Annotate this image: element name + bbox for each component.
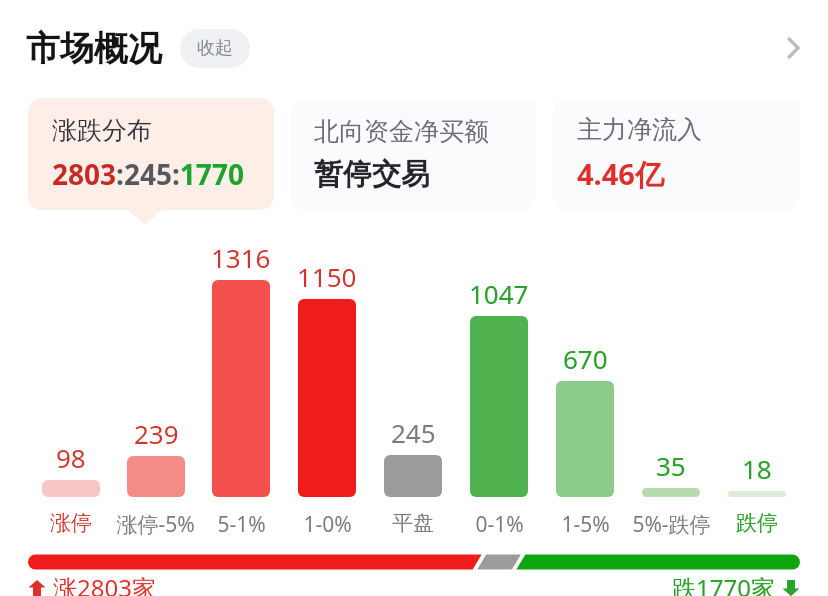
staticText: 0-1% <box>475 510 524 536</box>
staticText: 涨停-5% <box>116 510 195 536</box>
staticText: 5-1% <box>217 510 266 536</box>
staticText: 35 <box>656 448 686 483</box>
staticText: 涨跌分布 <box>52 115 152 146</box>
staticText: 平盘 <box>392 510 434 536</box>
staticText: 245 <box>391 415 436 450</box>
staticText: 1-5% <box>561 510 610 536</box>
staticText: 主力净流入 <box>577 114 702 145</box>
staticText: 1-0% <box>303 510 352 536</box>
button[interactable]: 涨跌分布 <box>28 98 274 210</box>
staticText: 2803:245:1770 <box>52 155 244 193</box>
staticText: 98 <box>56 440 86 475</box>
staticText: 涨停 <box>50 510 92 536</box>
staticText: 跌1770家 <box>672 571 775 596</box>
staticText: 1047 <box>469 276 529 311</box>
staticText: 市场概况 <box>26 27 162 70</box>
staticText: 670 <box>563 341 608 376</box>
staticText: 1316 <box>211 240 271 275</box>
staticText: 18 <box>742 451 772 486</box>
staticText: 收起 <box>197 37 233 60</box>
staticText: 北向资金净买额 <box>314 116 489 147</box>
button[interactable]: 跌1770家 <box>672 571 800 596</box>
button[interactable]: 展开更多 <box>764 19 822 77</box>
button[interactable]: 北向资金净买额 <box>290 98 537 210</box>
staticText: 暂停交易 <box>314 156 430 193</box>
button[interactable]: 涨2803家 <box>28 571 156 596</box>
staticText: 涨2803家 <box>53 571 156 596</box>
staticText: 239 <box>134 416 179 451</box>
staticText: 5%-跌停 <box>632 510 711 536</box>
button[interactable]: 收起 <box>180 29 250 68</box>
staticText: 1150 <box>297 259 357 294</box>
staticText: 4.46亿 <box>577 154 664 194</box>
staticText: 跌停 <box>736 510 778 536</box>
button[interactable]: 主力净流入 <box>553 98 800 210</box>
